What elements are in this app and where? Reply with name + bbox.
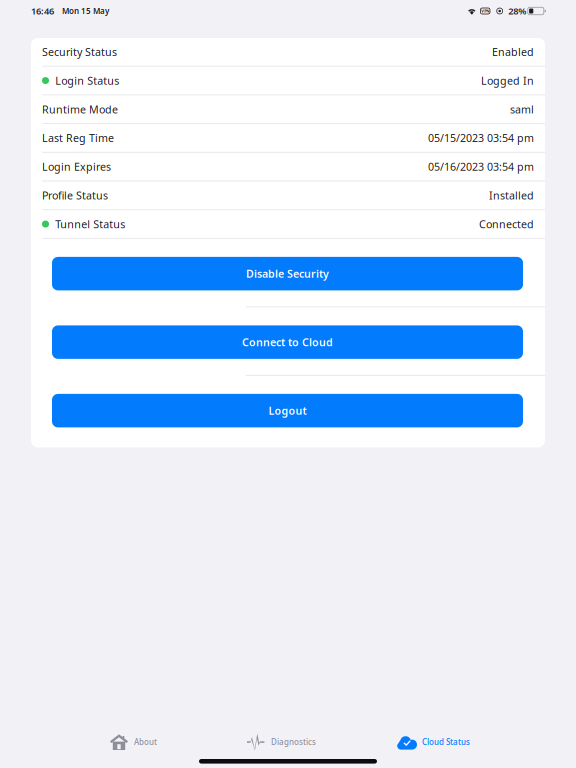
staticText: Tunnel Status (55, 217, 125, 231)
staticText: Login Status (55, 73, 119, 88)
staticText: Installed (489, 188, 534, 202)
staticText: Logged In (481, 73, 534, 88)
staticText: VPN (481, 8, 489, 14)
staticText: Enabled (492, 45, 534, 59)
staticText: Last Reg Time (42, 131, 114, 145)
staticText: saml (510, 102, 534, 116)
staticText: 05/15/2023 03:54 pm (428, 131, 534, 145)
button[interactable]: Logout (52, 394, 523, 427)
staticText: Mon 15 May (62, 6, 109, 16)
staticText: Profile Status (42, 188, 108, 202)
button[interactable]: Diagnostics (241, 727, 322, 757)
staticText: 05/16/2023 03:54 pm (428, 160, 534, 174)
staticText: Runtime Mode (42, 102, 118, 116)
button[interactable]: Cloud Status (391, 727, 476, 757)
staticText: Diagnostics (271, 737, 316, 747)
staticText: Security Status (42, 45, 117, 59)
button[interactable]: Connect to Cloud (52, 325, 523, 359)
staticText: Login Expires (42, 160, 111, 174)
staticText: 16:46 (31, 5, 54, 17)
staticText: Cloud Status (422, 737, 470, 747)
staticText: 28% (508, 5, 526, 17)
staticText: Logout (268, 404, 306, 418)
button[interactable]: About (104, 727, 163, 757)
staticText: Connect to Cloud (242, 335, 333, 349)
staticText: Connected (479, 217, 534, 231)
staticText: About (134, 737, 157, 747)
staticText: Disable Security (246, 267, 329, 281)
button[interactable]: Disable Security (52, 257, 523, 290)
